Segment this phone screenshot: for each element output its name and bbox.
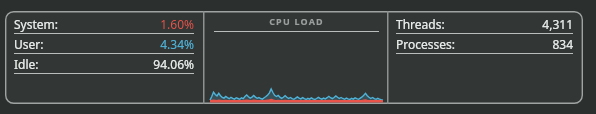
staticText: 4,311 — [542, 16, 573, 32]
button[interactable]: Threads: — [396, 14, 573, 34]
button[interactable]: User: — [14, 34, 194, 54]
button[interactable]: System: — [14, 14, 194, 34]
staticText: User: — [14, 36, 44, 52]
button[interactable]: Processes: — [396, 34, 573, 54]
button[interactable]: Idle: — [14, 54, 194, 74]
button[interactable]: CPU load graph — [206, 11, 387, 104]
staticText: Threads: — [396, 16, 445, 32]
staticText: 4.34% — [160, 36, 194, 52]
staticText: System: — [14, 16, 58, 32]
staticText: Processes: — [396, 36, 455, 52]
staticText: 834 — [552, 36, 573, 52]
staticText: CPU LOAD — [214, 15, 379, 27]
staticText: 1.60% — [160, 16, 194, 32]
staticText: Idle: — [14, 56, 39, 72]
staticText: 94.06% — [153, 56, 194, 72]
